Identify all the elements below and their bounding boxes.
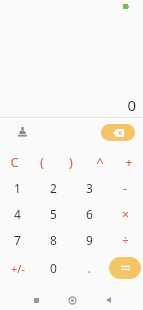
staticText: ( [40, 153, 44, 171]
staticText: ) [69, 153, 73, 171]
staticText: ^ [96, 153, 104, 171]
staticText: +/- [11, 261, 25, 276]
button[interactable]: Home [60, 290, 84, 310]
button[interactable]: 7 [0, 227, 35, 253]
staticText: × [122, 206, 129, 222]
staticText: 2 [50, 180, 57, 196]
staticText: 0 [127, 95, 136, 115]
staticText: 6 [86, 206, 93, 222]
button[interactable]: Back [96, 290, 120, 310]
button[interactable]: 2 [35, 175, 71, 201]
button[interactable]: 0 [35, 253, 71, 283]
staticText: 9 [86, 232, 93, 248]
staticText: 4 [14, 206, 21, 222]
staticText: ÷ [122, 232, 129, 248]
button[interactable]: ) [56, 149, 85, 175]
staticText: C [10, 153, 19, 171]
button[interactable]: Equals [109, 257, 141, 279]
button[interactable]: 8 [35, 227, 71, 253]
button[interactable]: ( [28, 149, 56, 175]
button[interactable]: ^ [85, 149, 114, 175]
button[interactable]: Recent apps [24, 290, 48, 310]
button[interactable]: 6 [71, 201, 107, 227]
staticText: 3 [86, 180, 93, 196]
staticText: 1 [14, 180, 21, 196]
button[interactable]: . [71, 253, 107, 283]
button[interactable]: History [13, 123, 31, 141]
button[interactable]: 4 [0, 201, 35, 227]
button[interactable]: + [114, 149, 143, 175]
button[interactable]: 3 [71, 175, 107, 201]
staticText: - [123, 180, 127, 196]
button[interactable]: 9 [71, 227, 107, 253]
button[interactable]: ÷ [107, 227, 143, 253]
staticText: 8 [50, 232, 57, 248]
button[interactable]: 1 [0, 175, 35, 201]
button[interactable]: - [107, 175, 143, 201]
button[interactable]: × [107, 201, 143, 227]
staticText: 0 [50, 260, 57, 276]
staticText: . [87, 260, 91, 276]
staticText: 5 [50, 206, 57, 222]
staticText: 7 [14, 232, 21, 248]
button[interactable]: +/- [0, 253, 35, 283]
button[interactable]: C [0, 149, 28, 175]
button[interactable]: 5 [35, 201, 71, 227]
staticText: + [125, 153, 133, 171]
button[interactable]: Backspace [101, 124, 135, 141]
